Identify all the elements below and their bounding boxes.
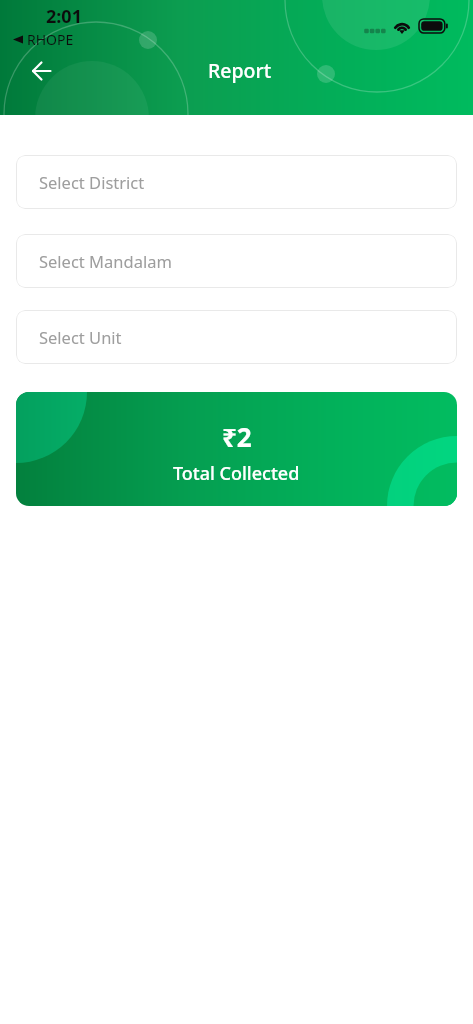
staticText: 2:01 [46,4,82,29]
button[interactable]: Select Mandalam [16,234,457,288]
staticText: Report [208,57,272,84]
button[interactable]: Back [19,49,63,93]
button[interactable]: ₹2 [16,392,457,506]
staticText: Total Collected [173,461,300,486]
staticText: ₹2 [222,419,252,454]
button[interactable]: Select Unit [16,310,457,364]
staticText: Select District [39,171,145,193]
staticText: RHOPE [27,30,74,48]
button[interactable]: Select District [16,155,457,209]
staticText: Select Mandalam [39,250,172,272]
staticText: Select Unit [39,326,122,348]
